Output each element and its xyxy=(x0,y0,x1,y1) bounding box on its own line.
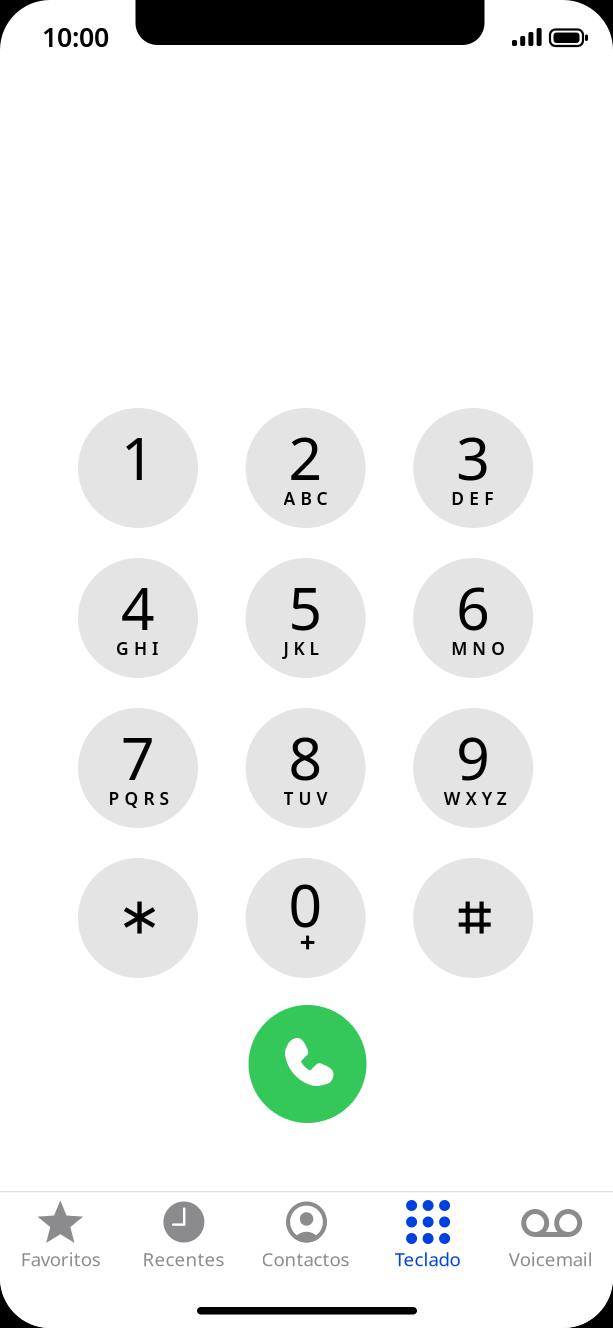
staticText: 4 xyxy=(121,568,155,646)
button[interactable]: Recentes xyxy=(123,1192,245,1279)
button[interactable]: 1 xyxy=(78,408,198,528)
button[interactable]: Favoritos xyxy=(0,1192,123,1279)
staticText: 2 xyxy=(289,418,323,496)
staticText: P Q R S xyxy=(108,787,169,810)
staticText: 7 xyxy=(121,718,155,796)
button[interactable]: 6 xyxy=(413,558,533,678)
button[interactable]: 3 xyxy=(413,408,533,528)
staticText: 1 xyxy=(121,418,155,496)
button[interactable]: 4 xyxy=(78,558,198,678)
button[interactable]: star xyxy=(78,858,198,978)
staticText: 10:00 xyxy=(42,19,109,54)
button[interactable]: Teclado xyxy=(368,1192,490,1279)
button[interactable]: Call xyxy=(248,1005,366,1123)
button[interactable]: 7 xyxy=(78,708,198,828)
button[interactable]: 8 xyxy=(246,708,366,828)
staticText: 9 xyxy=(456,718,490,796)
staticText: A B C xyxy=(284,487,328,510)
staticText: J K L xyxy=(284,637,319,660)
button[interactable]: 0 xyxy=(246,858,366,978)
staticText: T U V xyxy=(284,787,328,810)
staticText: W X Y Z xyxy=(444,787,507,810)
staticText: Voicemail xyxy=(509,1246,593,1271)
staticText: Contactos xyxy=(261,1246,349,1271)
button[interactable]: Voicemail xyxy=(490,1192,613,1279)
staticText: Favoritos xyxy=(21,1246,101,1271)
staticText: 8 xyxy=(289,718,323,796)
button[interactable]: 5 xyxy=(246,558,366,678)
staticText: 0 xyxy=(289,865,323,943)
staticText: 3 xyxy=(456,418,490,496)
staticText: G H I xyxy=(116,637,158,660)
staticText: D E F xyxy=(451,487,493,510)
button[interactable]: Contactos xyxy=(245,1192,368,1279)
button[interactable]: number sign xyxy=(413,858,533,978)
staticText: M N O xyxy=(451,637,505,660)
staticText: 5 xyxy=(289,568,323,646)
staticText: 6 xyxy=(456,568,490,646)
staticText: Teclado xyxy=(395,1246,461,1271)
staticText: Recentes xyxy=(142,1246,224,1271)
button[interactable]: 9 xyxy=(413,708,533,828)
button[interactable]: 2 xyxy=(246,408,366,528)
